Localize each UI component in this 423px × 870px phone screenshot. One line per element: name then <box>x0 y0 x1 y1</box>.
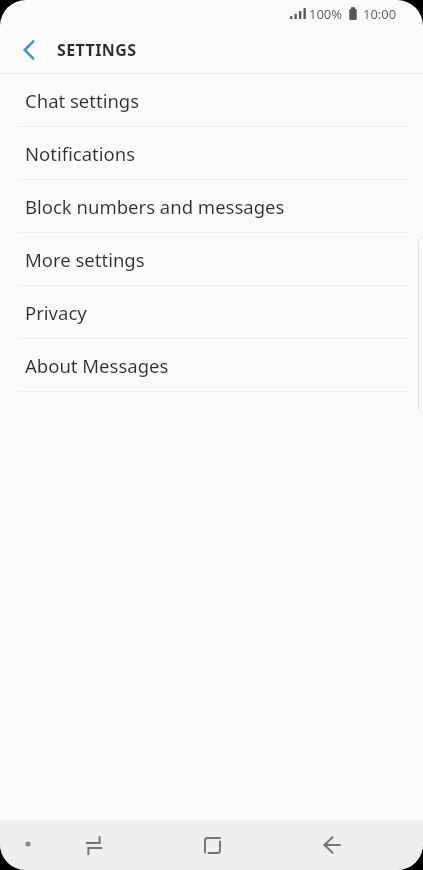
button[interactable] <box>70 821 118 869</box>
button[interactable] <box>308 821 356 869</box>
staticText: 100% <box>309 5 343 23</box>
button[interactable]: Notifications <box>0 127 423 179</box>
button[interactable]: More settings <box>0 233 423 285</box>
staticText: More settings <box>25 247 145 272</box>
button[interactable]: Block numbers and messages <box>0 180 423 232</box>
staticText: 10:00 <box>363 5 397 23</box>
staticText: About Messages <box>25 353 169 378</box>
staticText: Privacy <box>25 300 87 325</box>
button[interactable]: Privacy <box>0 286 423 338</box>
button[interactable] <box>0 27 48 73</box>
staticText: Block numbers and messages <box>25 194 285 219</box>
staticText: Notifications <box>25 141 136 166</box>
button[interactable]: Chat settings <box>0 74 423 126</box>
button[interactable]: About Messages <box>0 339 423 391</box>
staticText: Chat settings <box>25 88 140 113</box>
button[interactable] <box>188 821 236 869</box>
staticText: SETTINGS <box>57 39 137 61</box>
